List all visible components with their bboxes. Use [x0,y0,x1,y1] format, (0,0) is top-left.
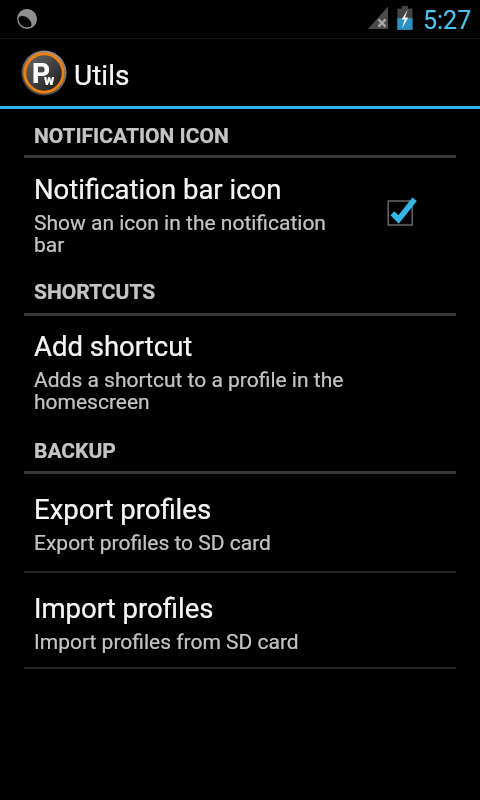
staticText: P [32,57,51,90]
staticText: Export profiles [34,493,372,525]
button[interactable]: Notification bar icon, enabled [0,158,480,262]
staticText: BACKUP [34,439,116,464]
staticText: Import profiles [34,592,372,624]
staticText: w [44,72,55,88]
button[interactable]: Import profiles [0,573,480,668]
button[interactable]: Add shortcut [0,316,480,422]
staticText: Utils [74,59,130,92]
staticText: Adds a shortcut to a profile in the home… [34,368,372,415]
staticText: 5:27 [423,6,472,35]
button[interactable]: Notification bar icon checkbox, checked [385,196,425,236]
staticText: NOTIFICATION ICON [34,124,229,149]
staticText: Add shortcut [34,330,372,362]
staticText: SHORTCUTS [34,280,156,305]
staticText: Import profiles from SD card [34,630,372,655]
staticText: Show an icon in the notification bar [34,211,339,258]
staticText: Notification bar icon [34,173,372,205]
button[interactable]: Export profiles [0,474,480,571]
staticText: Export profiles to SD card [34,531,372,556]
